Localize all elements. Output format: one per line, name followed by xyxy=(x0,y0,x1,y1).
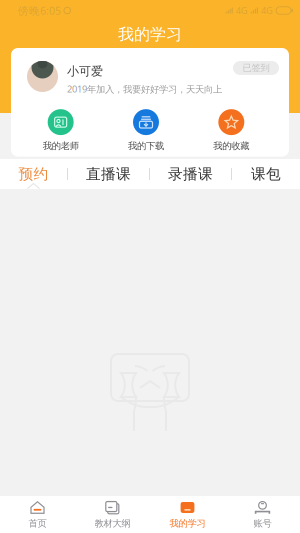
button[interactable]: 我的老师 xyxy=(18,109,103,152)
button[interactable]: 已签到 xyxy=(233,61,279,75)
staticText: 直播课 xyxy=(86,165,131,183)
staticText: 小可爱 xyxy=(67,64,103,79)
staticText: 账号 xyxy=(253,518,271,529)
button[interactable]: 直播课 xyxy=(68,159,149,189)
button[interactable]: 首页 xyxy=(0,496,75,533)
staticText: 我的学习 xyxy=(118,25,182,44)
staticText: 首页 xyxy=(28,518,46,529)
button[interactable]: 教材大纲 xyxy=(75,496,150,533)
staticText: 4G xyxy=(261,4,273,17)
button[interactable]: 预约 xyxy=(0,159,67,189)
staticText: 我的学习 xyxy=(169,518,205,529)
button[interactable]: 账号 xyxy=(225,496,300,533)
staticText: 已签到 xyxy=(242,62,269,74)
staticText: 我的下载 xyxy=(128,140,164,152)
staticText: 我的老师 xyxy=(43,140,79,152)
staticText: 2019年加入，我要好好学习，天天向上 xyxy=(67,83,222,95)
button[interactable]: 录播课 xyxy=(150,159,231,189)
button[interactable]: 课包 xyxy=(232,159,300,189)
button[interactable]: 我的收藏 xyxy=(189,109,274,152)
button[interactable]: 我的下载 xyxy=(103,109,189,152)
staticText: 傍晚6:05 xyxy=(18,3,61,18)
staticText: 教材大纲 xyxy=(94,518,130,529)
staticText: 4G xyxy=(236,4,248,17)
button[interactable]: 我的学习 xyxy=(150,496,225,533)
staticText: 我的收藏 xyxy=(213,140,249,152)
staticText: 课包 xyxy=(251,165,281,183)
staticText: 录播课 xyxy=(168,165,213,183)
staticText: 预约 xyxy=(18,165,48,183)
